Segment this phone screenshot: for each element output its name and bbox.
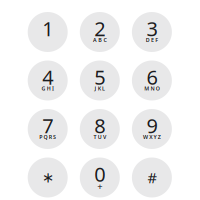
staticText: 5	[94, 64, 105, 90]
button[interactable]: 8	[80, 109, 120, 149]
button[interactable]: 1	[28, 12, 68, 52]
staticText: 6	[146, 64, 157, 90]
staticText: ABC	[93, 36, 106, 44]
staticText: 7	[42, 112, 53, 139]
button[interactable]: 2	[80, 12, 120, 52]
staticText: TUV	[93, 133, 106, 141]
staticText: GHI	[41, 85, 54, 92]
staticText: 3	[146, 15, 157, 42]
staticText: 4	[42, 64, 53, 90]
button[interactable]: 0	[80, 157, 120, 197]
staticText: #	[147, 168, 156, 187]
button[interactable]: 4	[28, 60, 68, 100]
staticText: PQRS	[39, 133, 56, 141]
button[interactable]: #	[132, 157, 172, 197]
button[interactable]: 3	[132, 12, 172, 52]
staticText: 1	[42, 15, 53, 42]
button[interactable]: ∗	[28, 157, 68, 197]
staticText: 2	[94, 15, 105, 42]
staticText: WXYZ	[143, 133, 161, 141]
button[interactable]: 5	[80, 60, 120, 100]
staticText: MNO	[144, 85, 160, 92]
staticText: +	[97, 180, 102, 193]
staticText: 9	[146, 112, 157, 139]
staticText: ∗	[42, 169, 54, 186]
button[interactable]: 6	[132, 60, 172, 100]
staticText: 0	[94, 161, 105, 187]
staticText: JKL	[94, 85, 105, 92]
button[interactable]: 9	[132, 109, 172, 149]
staticText: DEF	[146, 36, 158, 44]
staticText: 8	[94, 112, 105, 139]
button[interactable]: 7	[28, 109, 68, 149]
